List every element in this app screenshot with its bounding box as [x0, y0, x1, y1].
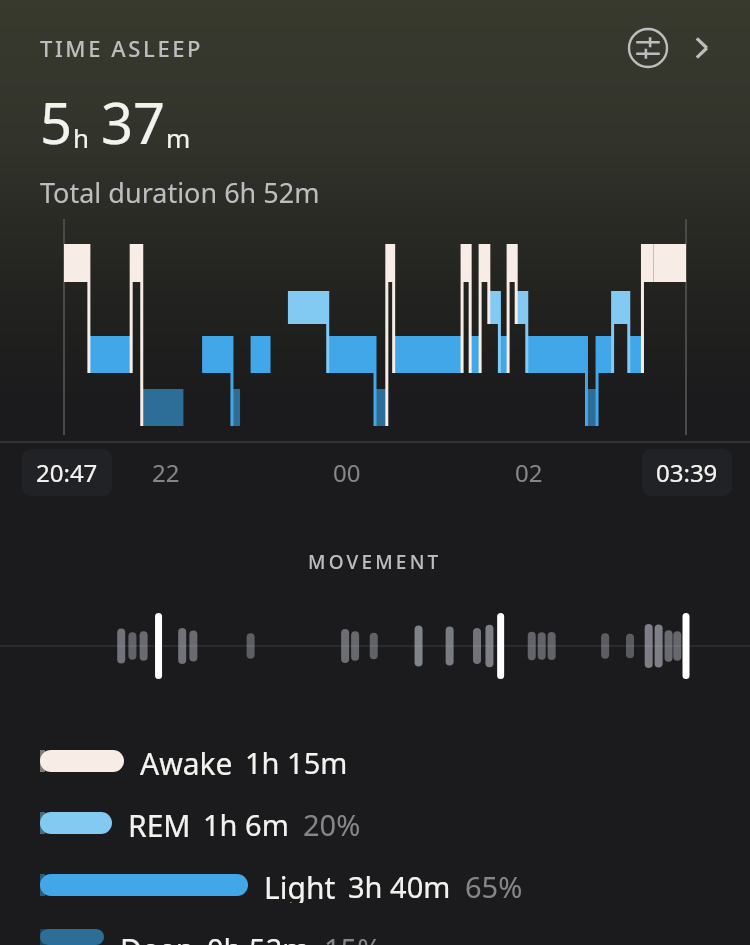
staticText: 0h 52m	[207, 929, 310, 945]
staticText: 65%	[465, 867, 523, 903]
staticText: MOVEMENT	[308, 549, 442, 575]
button[interactable]: Light	[40, 867, 726, 903]
button[interactable]: Awake	[40, 743, 726, 779]
staticText: Light	[264, 867, 336, 903]
staticText: REM	[128, 805, 191, 841]
staticText: 5	[40, 84, 73, 160]
button[interactable]: Deep	[40, 929, 726, 945]
staticText: 20%	[303, 805, 361, 841]
staticText: 3h 40m	[348, 867, 451, 903]
staticText: m	[166, 120, 191, 155]
button[interactable]: More details	[684, 28, 724, 68]
staticText: Total duration 6h 52m	[40, 174, 320, 211]
staticText: 00	[333, 456, 361, 489]
staticText: 03:39	[656, 456, 718, 489]
staticText: h	[73, 120, 90, 155]
staticText: TIME ASLEEP	[40, 33, 204, 63]
staticText: 1h 6m	[203, 805, 289, 841]
staticText: 20:47	[36, 456, 98, 489]
staticText: Deep	[120, 929, 195, 945]
staticText: 02	[515, 456, 543, 489]
staticText: 1h 15m	[245, 743, 348, 779]
staticText: 37	[101, 84, 166, 160]
staticText: Awake	[140, 743, 233, 779]
staticText: 22	[152, 456, 180, 489]
button[interactable]: Adjust sleep settings	[626, 26, 670, 70]
staticText: 15%	[324, 929, 382, 945]
button[interactable]: REM	[40, 805, 726, 841]
